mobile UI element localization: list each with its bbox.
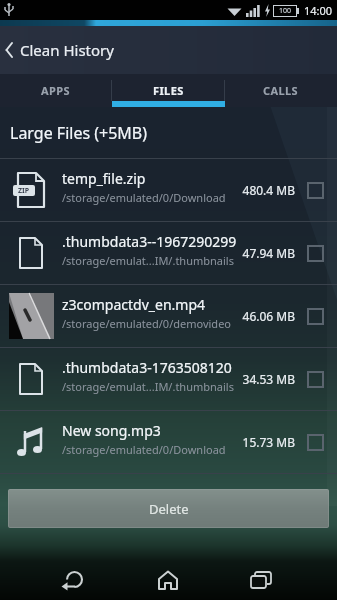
staticText: 14:00 [304, 3, 333, 18]
staticText: /storage/emulated/0/Download [62, 442, 226, 457]
staticText: /storage/emulated/0/Download [62, 190, 226, 205]
button[interactable]: .thumbdata3--1967290299 [0, 222, 337, 284]
button[interactable]: FILES [112, 74, 224, 107]
staticText: Delete [149, 500, 189, 518]
button[interactable]: New song.mp3 [0, 411, 337, 473]
staticText: .thumbdata3-1763508120 [62, 358, 232, 377]
button[interactable] [50, 563, 94, 597]
button[interactable] [307, 245, 324, 262]
staticText: temp_file.zip [62, 169, 146, 188]
staticText: .thumbdata3--1967290299 [62, 232, 237, 251]
staticText: Clean History [20, 40, 114, 60]
button[interactable] [146, 563, 190, 597]
staticText: APPS [41, 83, 70, 98]
staticText: ZIP [18, 186, 30, 196]
button[interactable] [239, 563, 283, 597]
button[interactable] [307, 182, 324, 199]
staticText: z3compactdv_en.mp4 [62, 295, 206, 314]
staticText: /storage/emulated/0/demovideo [62, 316, 231, 331]
button[interactable]: Clean History [0, 26, 337, 74]
staticText: New song.mp3 [62, 421, 161, 440]
staticText: 46.06 MB [242, 308, 295, 324]
button[interactable]: .thumbdata3-1763508120 [0, 348, 337, 410]
button[interactable] [307, 434, 324, 451]
button[interactable]: CALLS [225, 74, 337, 107]
staticText: FILES [153, 83, 184, 98]
button[interactable]: Delete [8, 489, 329, 528]
staticText: Large Files (+5MB) [10, 122, 148, 144]
button[interactable] [307, 371, 324, 388]
button[interactable] [307, 308, 324, 325]
button[interactable]: APPS [0, 74, 111, 107]
button[interactable]: ZIP [0, 159, 337, 221]
staticText: /storage/emulat...IM/.thumbnails [62, 379, 234, 394]
staticText: 15.73 MB [242, 434, 295, 450]
staticText: 47.94 MB [242, 245, 295, 261]
staticText: CALLS [263, 83, 299, 98]
staticText: /storage/emulat...IM/.thumbnails [62, 253, 234, 268]
staticText: 100 [279, 6, 292, 16]
staticText: 480.4 MB [242, 182, 295, 198]
button[interactable]: z3compactdv_en.mp4 [0, 285, 337, 347]
staticText: 34.53 MB [242, 371, 295, 387]
